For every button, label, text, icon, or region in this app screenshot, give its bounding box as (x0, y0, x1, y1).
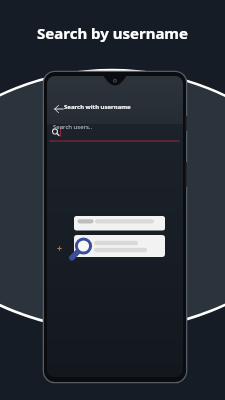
button[interactable]: Back (50, 98, 66, 114)
staticText: Search by username (37, 23, 188, 43)
button[interactable]: Search users.. (48, 120, 178, 134)
staticText: Search users.. (53, 123, 93, 131)
staticText: Search with username (64, 103, 131, 111)
